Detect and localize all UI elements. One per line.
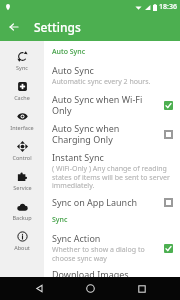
staticText: Service xyxy=(13,184,32,191)
button[interactable]: Sync on App Launch xyxy=(52,193,174,211)
button[interactable]: About xyxy=(0,226,44,256)
staticText: Sync xyxy=(52,215,68,225)
button[interactable]: Control xyxy=(0,136,44,166)
button[interactable]: Sync Action xyxy=(52,229,174,266)
staticText: Auto Sync when Wi-Fi Only xyxy=(52,93,156,116)
button[interactable]: Auto Sync when Wi-Fi Only xyxy=(52,90,174,119)
button[interactable]: Interface xyxy=(0,106,44,136)
staticText: Automatic sync every 2 hours. xyxy=(52,77,151,87)
staticText: Cache xyxy=(14,94,30,101)
button[interactable]: Back xyxy=(0,13,28,41)
staticText: Backup xyxy=(12,214,32,221)
button[interactable]: Sync xyxy=(0,46,44,76)
staticText: Sync xyxy=(16,64,28,71)
button[interactable]: Auto Sync xyxy=(52,61,174,90)
staticText: Whether to show a dialog to choose sync … xyxy=(52,245,156,263)
staticText: Download Images xyxy=(52,268,129,277)
button[interactable]: Checked xyxy=(162,242,174,254)
staticText: Auto Sync when Charging Only xyxy=(52,122,156,145)
staticText: About xyxy=(14,244,30,251)
button[interactable]: Service xyxy=(0,166,44,196)
staticText: Auto Sync xyxy=(52,47,86,57)
button[interactable]: Instant Sync xyxy=(52,148,174,193)
button[interactable]: Home xyxy=(77,277,103,300)
button[interactable]: Back xyxy=(26,277,52,300)
button[interactable]: Unchecked xyxy=(162,128,174,140)
staticText: Instant Sync xyxy=(52,151,104,163)
staticText: Sync on App Launch xyxy=(52,196,138,208)
staticText: Interface xyxy=(10,124,34,131)
button[interactable]: Unchecked xyxy=(162,196,174,208)
staticText: Settings xyxy=(34,19,81,35)
button[interactable]: Recent apps xyxy=(129,277,155,300)
staticText: Control xyxy=(12,154,32,161)
staticText: ( WiFi-Only ) Any change of reading stat… xyxy=(52,164,174,190)
button[interactable]: Backup xyxy=(0,196,44,226)
staticText: Auto Sync xyxy=(52,64,94,76)
staticText: 18:36 xyxy=(159,2,177,12)
button[interactable]: Checked xyxy=(162,99,174,111)
button[interactable]: Cache xyxy=(0,76,44,106)
button[interactable]: Auto Sync when Charging Only xyxy=(52,119,174,148)
staticText: Sync Action xyxy=(52,232,101,244)
